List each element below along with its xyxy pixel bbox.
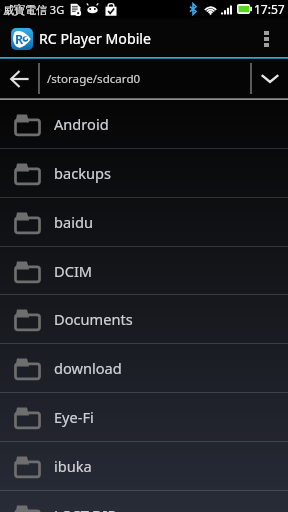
button[interactable]: LOST.DIR — [0, 491, 288, 512]
staticText: LOST.DIR — [54, 505, 117, 512]
button[interactable]: Android — [0, 100, 288, 148]
button[interactable]: backups — [0, 149, 288, 197]
staticText: Documents — [54, 309, 133, 329]
staticText: download — [54, 358, 122, 378]
staticText: Android — [54, 114, 109, 134]
button[interactable]: Eye-Fi — [0, 393, 288, 441]
staticText: RC Player Mobile — [39, 29, 151, 48]
staticText: baidu — [54, 212, 93, 232]
button[interactable]: ibuka — [0, 442, 288, 490]
staticText: 17:57 — [254, 1, 285, 17]
button[interactable]: More options — [244, 21, 288, 56]
button[interactable]: Dropdown — [252, 59, 288, 98]
button[interactable]: download — [0, 344, 288, 392]
button[interactable]: Back — [0, 59, 38, 98]
staticText: /storage/sdcard0 — [47, 71, 141, 87]
button[interactable]: Documents — [0, 295, 288, 343]
staticText: backups — [54, 163, 111, 183]
staticText: Eye-Fi — [54, 407, 94, 427]
button[interactable]: baidu — [0, 198, 288, 246]
staticText: R — [15, 31, 24, 48]
button[interactable]: DCIM — [0, 247, 288, 294]
staticText: ibuka — [54, 456, 92, 476]
staticText: 威寶電信 3G — [3, 2, 65, 17]
staticText: DCIM — [54, 261, 93, 281]
